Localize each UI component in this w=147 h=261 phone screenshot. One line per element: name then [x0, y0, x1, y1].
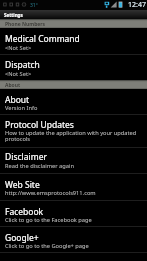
staticText: About [5, 94, 30, 106]
staticText: Read the disclaimer again [5, 162, 74, 170]
button[interactable]: Protocol Updates [0, 114, 147, 147]
button[interactable]: Dispatch [0, 54, 147, 80]
staticText: <Not Set> [5, 70, 32, 78]
staticText: Google+ [5, 232, 39, 244]
staticText: How to update the application with your … [5, 129, 143, 142]
staticText: About [5, 82, 21, 89]
button[interactable]: Disclaimer [0, 147, 147, 173]
button[interactable]: Facebook [0, 200, 147, 226]
button[interactable]: Medical Command [0, 28, 147, 54]
staticText: Disclaimer [5, 151, 47, 163]
staticText: Facebook [5, 206, 44, 218]
staticText: 12:47 [128, 0, 146, 10]
staticText: Click to go to the Facebook page [5, 216, 92, 224]
button[interactable]: Web Site [0, 173, 147, 200]
staticText: <Not Set> [5, 44, 32, 52]
other: Status bar [0, 0, 147, 10]
staticText: http://www.emsprotocols911.com [5, 189, 96, 197]
staticText: Settings [4, 12, 23, 18]
button[interactable]: Google+ [0, 226, 147, 252]
staticText: Protocol Updates [5, 119, 74, 131]
button[interactable]: Twitter [0, 252, 147, 261]
staticText: Version Info [5, 104, 38, 112]
staticText: 31° [30, 2, 38, 9]
staticText: Phone Numbers [5, 21, 46, 28]
staticText: Medical Command [5, 33, 80, 45]
staticText: Web Site [5, 179, 40, 191]
button[interactable]: About [0, 89, 147, 114]
staticText: Click to go to the Google+ page [5, 242, 89, 250]
staticText: Dispatch [5, 59, 40, 71]
